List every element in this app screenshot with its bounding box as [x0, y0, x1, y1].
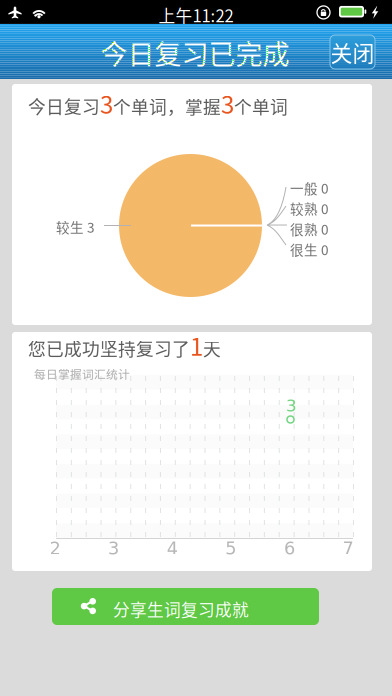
staticText: 很熟 0 [290, 219, 329, 239]
button[interactable]: 关闭 [330, 35, 375, 69]
staticText: 掌握 [185, 93, 221, 119]
staticText: 3 [108, 538, 119, 559]
staticText: 3 [221, 86, 234, 121]
staticText: 1 [190, 328, 203, 363]
staticText: 3 [100, 86, 113, 121]
staticText: 6 [284, 538, 295, 559]
staticText: 较熟 0 [290, 198, 329, 218]
staticText: 个单词， [113, 93, 185, 119]
staticText: 较生 3 [56, 217, 95, 237]
staticText: 3 [286, 396, 297, 415]
staticText: 2 [49, 538, 60, 559]
staticText: 个单词 [234, 93, 288, 119]
staticText: 很生 0 [290, 239, 329, 259]
staticText: 天 [203, 335, 221, 361]
staticText: 4 [167, 538, 178, 559]
staticText: 7 [342, 538, 353, 559]
button[interactable]: 分享生词复习成就 [52, 588, 319, 625]
staticText: 您已成功坚持复习了 [28, 335, 190, 361]
staticText: 上午11:22 [158, 3, 233, 27]
staticText: 今日复习 [28, 93, 100, 119]
staticText: 分享生词复习成就 [113, 597, 249, 621]
staticText: 一般 0 [290, 178, 329, 198]
staticText: 5 [225, 538, 236, 559]
staticText: 每日掌握词汇统计 [34, 365, 130, 382]
staticText: 今日复习已完成 [100, 33, 289, 72]
staticText: 关闭 [330, 36, 374, 68]
